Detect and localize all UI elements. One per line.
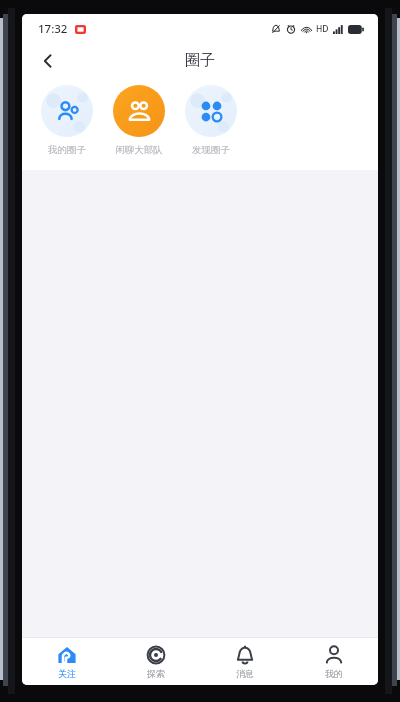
button[interactable]: 我的 [289,638,378,685]
staticText: 发现圈子 [192,144,230,156]
staticText: 关注 [58,668,76,679]
button[interactable]: 我的圈子 [40,85,94,156]
button[interactable]: 消息 [200,638,289,685]
staticText: 闲聊大部队 [115,144,163,156]
staticText: 圈子 [185,51,215,70]
staticText: 我的圈子 [48,144,86,156]
staticText: 17:32 [38,21,68,37]
button[interactable]: Back [30,44,66,77]
button[interactable]: 发现圈子 [184,85,238,156]
staticText: 探索 [147,668,165,679]
staticText: 我的 [325,668,343,679]
button[interactable]: 闲聊大部队 [112,85,166,156]
button[interactable]: 探索 [111,638,200,685]
staticText: 消息 [236,668,254,679]
staticText: HD [316,23,329,35]
button[interactable]: 关注 [22,638,111,685]
